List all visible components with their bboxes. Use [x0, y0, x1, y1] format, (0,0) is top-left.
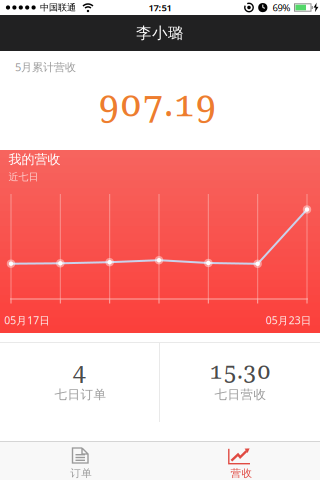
staticText: 七日订单: [54, 387, 106, 402]
staticText: 我的营收: [8, 151, 60, 168]
staticText: 907.19: [98, 76, 217, 127]
staticText: 69%: [272, 1, 290, 14]
staticText: 4: [73, 354, 87, 386]
staticText: 05月17日: [4, 313, 50, 327]
staticText: 17:51: [148, 1, 171, 14]
staticText: 营收: [230, 467, 252, 480]
staticText: 5月累计营收: [15, 59, 76, 74]
staticText: 李小璐: [136, 23, 184, 43]
staticText: 15.30: [209, 353, 271, 386]
staticText: 七日营收: [214, 387, 266, 402]
staticText: 订单: [70, 467, 92, 480]
button[interactable]: 订单: [0, 441, 160, 480]
staticText: 05月23日: [266, 313, 312, 327]
staticText: 近七日: [8, 171, 38, 183]
button[interactable]: 营收: [160, 441, 320, 480]
staticText: 中国联通: [40, 2, 76, 13]
